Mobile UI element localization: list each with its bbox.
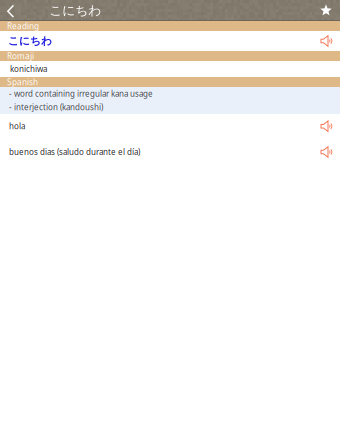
button[interactable]: Play reading [314,35,333,47]
staticText: Spanish [7,76,38,88]
button[interactable]: buenos dias (saludo durante el día) [0,138,340,165]
staticText: こにちわ [49,2,101,18]
staticText: Romaji [7,50,34,62]
button[interactable]: Back [0,0,19,21]
staticText: hola [9,121,25,132]
staticText: buenos dias (saludo durante el día) [9,147,140,157]
staticText: こにちわ [8,34,52,48]
staticText: Reading [7,20,39,32]
staticText: - word containing irregular kana usage [9,88,153,99]
button[interactable]: hola [0,114,340,138]
button[interactable]: Favorite [312,0,340,21]
staticText: konichiwa [10,64,47,74]
staticText: - interjection (kandoushi) [9,102,103,113]
